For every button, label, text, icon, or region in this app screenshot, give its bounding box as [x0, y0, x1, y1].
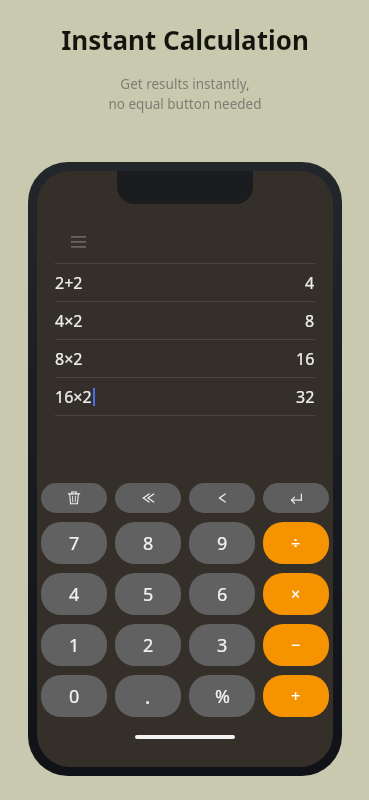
staticText: Instant Calculation — [61, 22, 309, 57]
staticText: 2+2 — [55, 272, 83, 294]
staticText: 8 — [305, 310, 315, 332]
button[interactable]: 0 — [41, 675, 107, 717]
button[interactable]: 3 — [189, 624, 255, 666]
staticText: 3 — [217, 633, 228, 658]
button[interactable]: Backspace — [189, 483, 255, 513]
button[interactable]: 8 — [115, 522, 181, 564]
staticText: − — [291, 634, 301, 656]
staticText: 4×2 — [55, 310, 83, 332]
button[interactable]: 9 — [189, 522, 255, 564]
button[interactable]: 4×2 — [37, 301, 333, 339]
button[interactable]: + — [263, 675, 329, 717]
staticText: 4 — [69, 582, 80, 607]
staticText: × — [291, 583, 301, 605]
staticText: 32 — [296, 386, 315, 408]
button[interactable]: Delete all — [115, 483, 181, 513]
button[interactable]: 8×2 — [37, 339, 333, 377]
button[interactable]: ÷ — [263, 522, 329, 564]
button[interactable]: . — [115, 675, 181, 717]
button[interactable]: 7 — [41, 522, 107, 564]
button[interactable]: 5 — [115, 573, 181, 615]
staticText: 6 — [217, 582, 228, 607]
staticText: 2 — [143, 633, 154, 658]
button[interactable]: Enter — [263, 483, 329, 513]
button[interactable]: Clear — [41, 483, 107, 513]
staticText: Get results instantly, no equal button n… — [108, 75, 262, 113]
staticText: 0 — [69, 684, 80, 709]
button[interactable]: 2+2 — [37, 263, 333, 301]
button[interactable]: 6 — [189, 573, 255, 615]
button[interactable]: 16×2 — [37, 377, 333, 415]
staticText: . — [145, 683, 151, 710]
staticText: % — [215, 684, 230, 709]
staticText: 7 — [69, 531, 80, 556]
staticText: 8 — [143, 531, 154, 556]
staticText: 8×2 — [55, 348, 83, 370]
button[interactable]: % — [189, 675, 255, 717]
button[interactable]: Menu — [65, 229, 91, 255]
staticText: 1 — [69, 633, 80, 658]
staticText: 5 — [143, 582, 154, 607]
staticText: + — [291, 685, 301, 707]
button[interactable]: 4 — [41, 573, 107, 615]
button[interactable]: 1 — [41, 624, 107, 666]
staticText: 16×2 — [55, 386, 92, 408]
button[interactable]: − — [263, 624, 329, 666]
staticText: ÷ — [291, 532, 301, 554]
staticText: 16 — [296, 348, 315, 370]
staticText: 9 — [217, 531, 228, 556]
button[interactable]: 2 — [115, 624, 181, 666]
button[interactable]: × — [263, 573, 329, 615]
staticText: 4 — [305, 272, 315, 294]
